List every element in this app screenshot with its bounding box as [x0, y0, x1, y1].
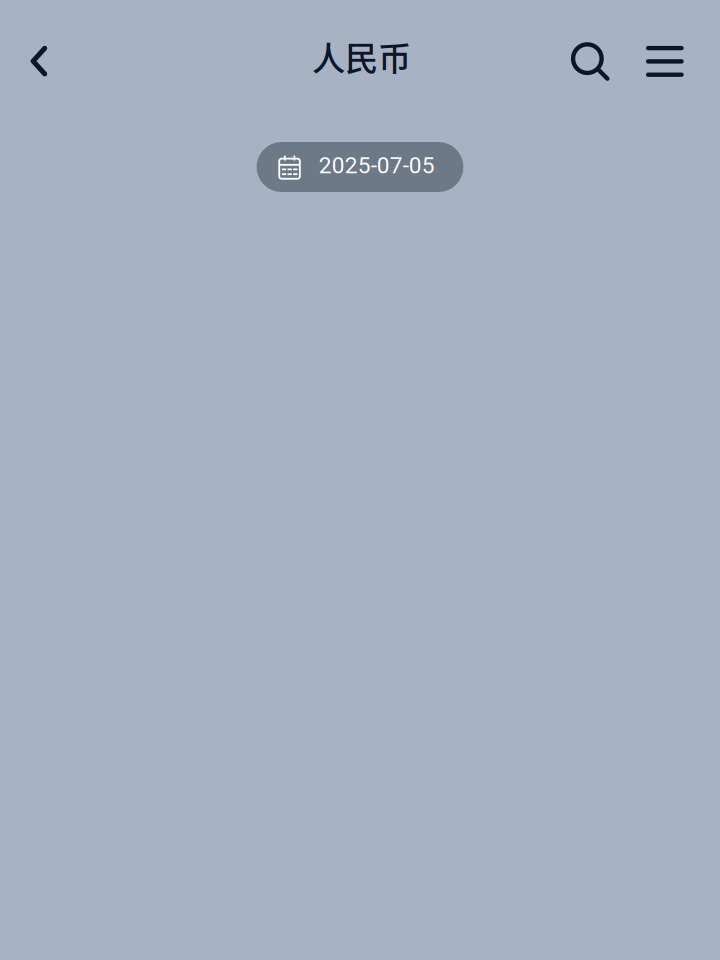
button[interactable]: Search — [562, 31, 618, 91]
button[interactable]: Back — [11, 31, 67, 91]
button[interactable]: Menu — [637, 31, 693, 91]
staticText: 2025-07-05 — [319, 152, 435, 179]
staticText: 人民币 — [312, 32, 411, 80]
button[interactable]: 2025-07-05 — [257, 142, 463, 192]
